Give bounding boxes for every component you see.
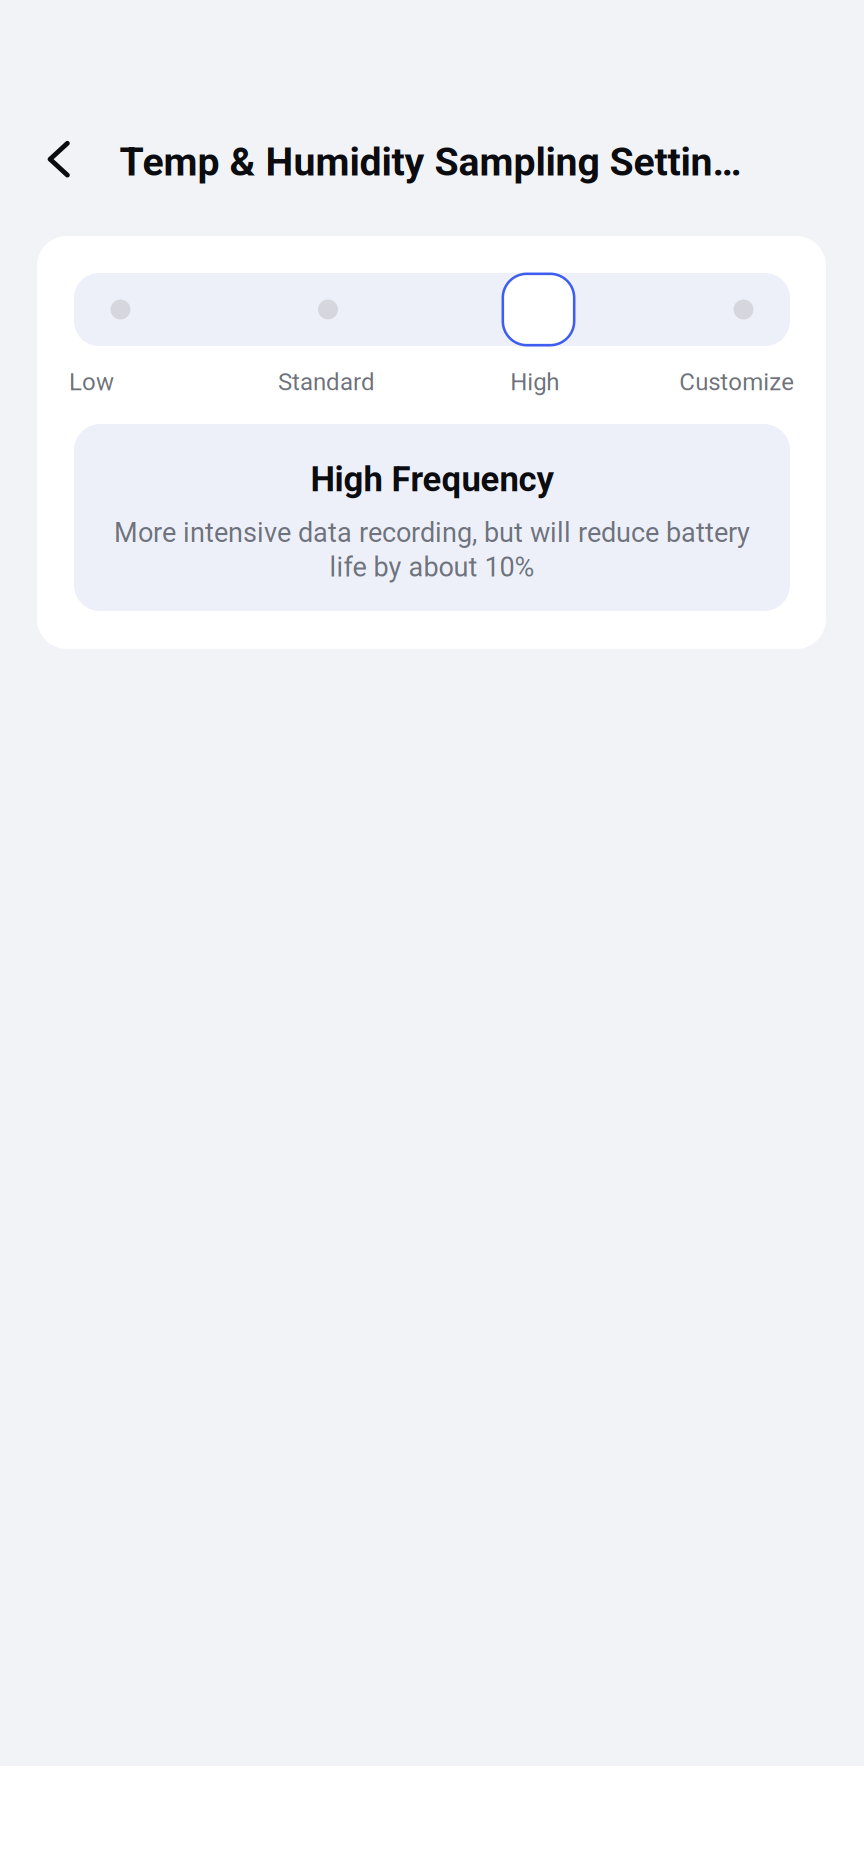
- button[interactable]: Standard: [238, 273, 418, 393]
- staticText: High Frequency: [310, 459, 553, 500]
- staticText: life by about 10%: [329, 551, 534, 583]
- staticText: High: [510, 368, 559, 396]
- staticText: Temp & Humidity Sampling Settin…: [119, 139, 741, 185]
- button[interactable]: High, selected: [448, 273, 628, 393]
- staticText: Standard: [278, 368, 375, 396]
- button[interactable]: Customize: [653, 273, 833, 393]
- button[interactable]: Back: [22, 121, 96, 197]
- staticText: Low: [69, 368, 114, 396]
- button[interactable]: Low: [30, 273, 210, 393]
- staticText: More intensive data recording, but will …: [114, 517, 750, 548]
- staticText: Customize: [679, 368, 794, 396]
